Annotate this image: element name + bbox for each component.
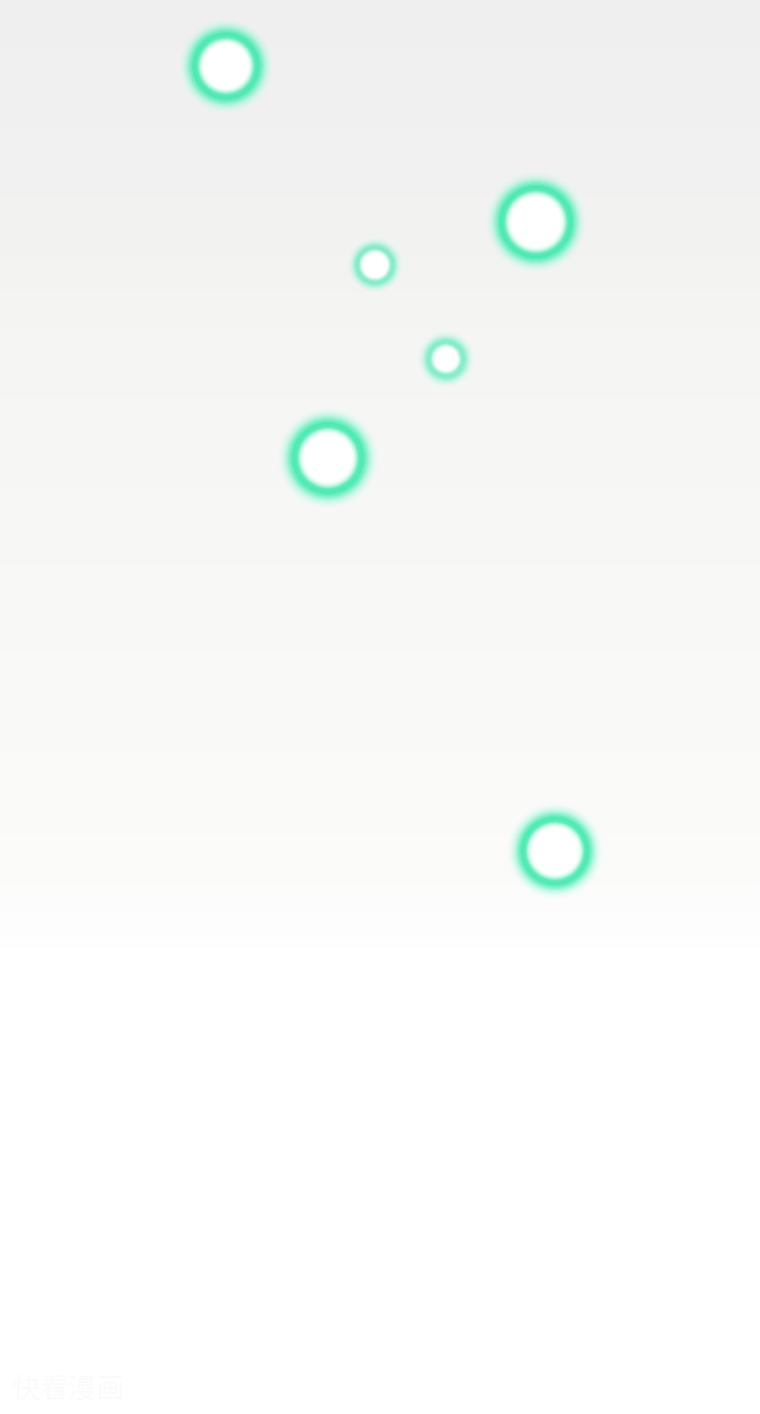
button[interactable]: Tap point 6	[506, 802, 604, 900]
button[interactable]: Tap point 4	[416, 329, 476, 389]
button[interactable]: Tap point 5	[276, 406, 380, 510]
button[interactable]: Tap point 1	[177, 17, 275, 115]
button[interactable]: Tap point 3	[346, 236, 404, 294]
button[interactable]: Tap point 2	[484, 170, 588, 274]
